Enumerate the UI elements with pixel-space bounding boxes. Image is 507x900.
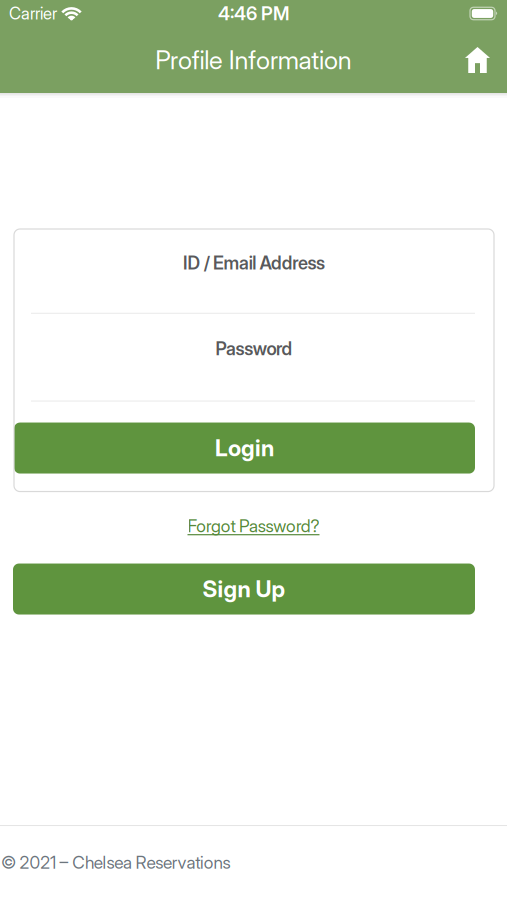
staticText: Sign Up <box>202 575 285 603</box>
staticText: ID / Email Address <box>183 252 325 274</box>
staticText: Forgot Password? <box>187 516 319 537</box>
staticText: © 2021 – Chelsea Reservations <box>1 852 230 873</box>
button[interactable]: Home <box>465 47 490 73</box>
button[interactable]: Password <box>14 314 494 402</box>
staticText: Login <box>215 434 274 462</box>
button[interactable]: Login <box>14 423 475 474</box>
staticText: Profile Information <box>155 45 352 75</box>
staticText: Carrier <box>9 3 57 24</box>
button[interactable]: ID / Email Address <box>14 229 494 314</box>
staticText: 4:46 PM <box>218 2 289 25</box>
button[interactable]: Sign Up <box>13 563 475 614</box>
staticText: Password <box>215 338 293 360</box>
button[interactable]: Forgot Password? <box>187 516 319 537</box>
